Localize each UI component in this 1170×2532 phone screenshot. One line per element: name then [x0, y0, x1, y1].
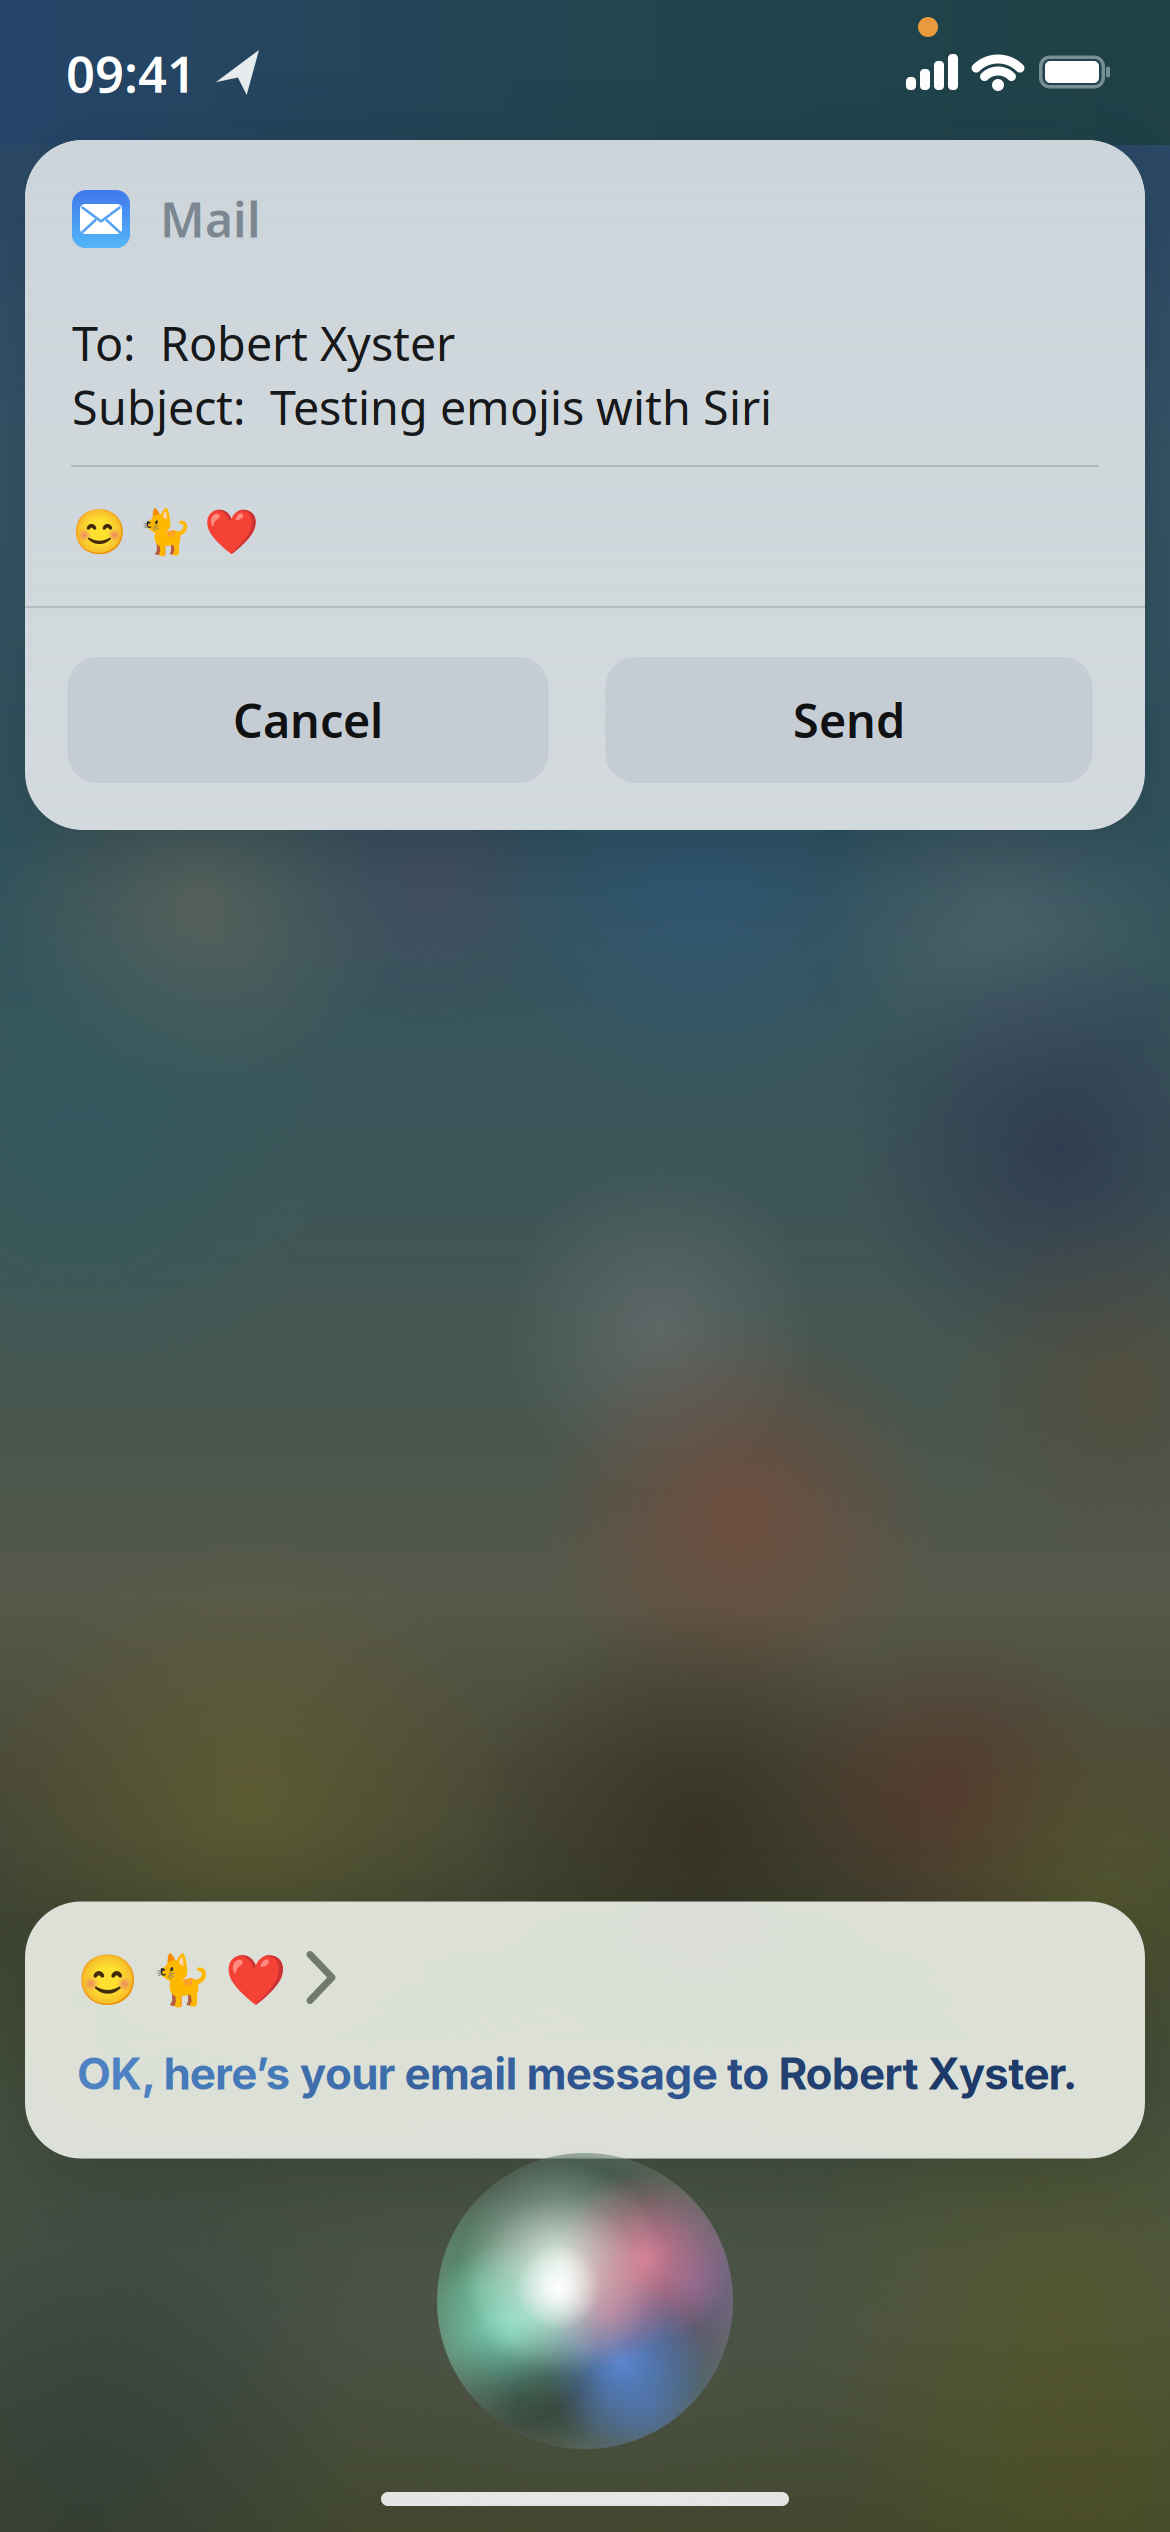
staticText: Xyster. — [928, 2047, 1078, 2100]
staticText: OK, — [77, 2047, 164, 2100]
staticText: to — [727, 2047, 778, 2100]
staticText: message — [527, 2047, 727, 2100]
staticText: Testing emojis with Siri — [270, 376, 772, 438]
button[interactable]: Cancel — [67, 657, 548, 783]
staticText: Robert — [778, 2047, 928, 2100]
staticText: To: — [72, 312, 160, 374]
staticText: 😊 🐈 ❤️ — [72, 501, 259, 559]
button[interactable]: 😊 🐈 ❤️ — [25, 1901, 1145, 2158]
staticText: Robert Xyster — [160, 312, 455, 374]
staticText: email — [405, 2047, 527, 2100]
staticText: here’s — [164, 2047, 300, 2100]
staticText: Send — [793, 689, 905, 751]
button[interactable]: Mail — [25, 140, 1145, 830]
staticText: your — [300, 2047, 405, 2100]
staticText: Cancel — [233, 689, 383, 751]
staticText: Subject: — [72, 376, 270, 438]
button[interactable]: Siri — [0, 0, 1170, 2532]
button[interactable]: Send — [605, 657, 1092, 783]
staticText: 😊 🐈 ❤️ — [77, 1945, 286, 2010]
staticText: Mail — [160, 187, 261, 251]
staticText: 09:41 — [66, 39, 196, 107]
